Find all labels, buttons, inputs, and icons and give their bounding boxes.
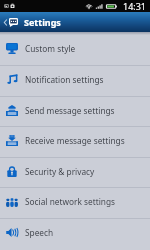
staticText: Notification settings — [25, 74, 104, 85]
button[interactable]: Security & privacy — [0, 157, 150, 188]
staticText: Custom style — [25, 43, 76, 54]
staticText: Receive message settings — [25, 135, 125, 146]
button[interactable]: Receive message settings — [0, 126, 150, 157]
button[interactable]: Notification settings — [0, 65, 150, 96]
staticText: 14:31 — [123, 0, 147, 12]
staticText: Settings — [24, 16, 61, 28]
button[interactable]: Speech — [0, 218, 150, 249]
button[interactable]: Navigate up — [0, 12, 150, 32]
button[interactable]: Social network settings — [0, 187, 150, 218]
staticText: Speech — [25, 227, 54, 238]
staticText: Social network settings — [25, 196, 115, 207]
button[interactable]: Custom style — [0, 34, 150, 65]
button[interactable]: Send message settings — [0, 96, 150, 127]
staticText: Send message settings — [25, 105, 115, 116]
staticText: Security & privacy — [25, 166, 95, 177]
